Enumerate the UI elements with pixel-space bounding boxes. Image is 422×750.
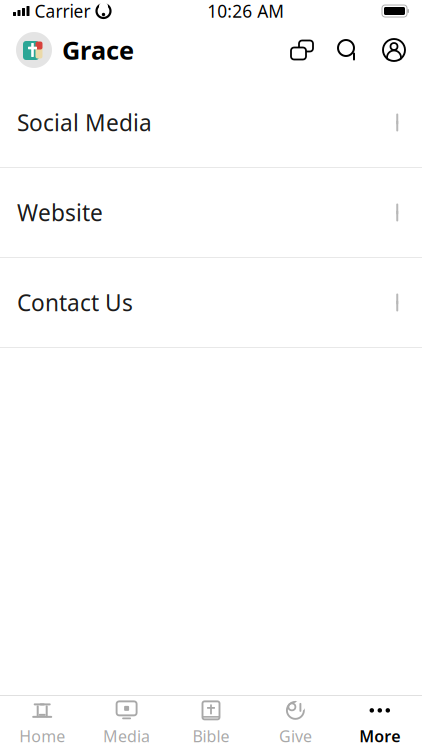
staticText: Grace [62,33,134,67]
staticText: Carrier [34,0,90,22]
staticText: Home [19,725,65,747]
button[interactable]: Search [336,38,360,62]
button[interactable]: Contact Us [0,258,422,347]
staticText: Give [279,725,312,747]
staticText: Website [17,197,103,227]
button[interactable]: Account [382,38,406,62]
button[interactable]: Social Media [0,78,422,167]
button[interactable]: Give [253,696,338,750]
button[interactable]: Bible [169,696,253,750]
staticText: Bible [192,725,229,747]
staticText: 10:26 AM [207,0,284,22]
button[interactable]: More [338,696,422,750]
button[interactable]: Home [0,696,84,750]
staticText: More [359,725,400,747]
button[interactable]: Grace church home [16,32,134,68]
button[interactable]: Website [0,168,422,257]
button[interactable]: Messages [290,39,314,61]
staticText: Contact Us [17,287,133,317]
button[interactable]: Media [84,696,169,750]
staticText: Media [103,725,150,747]
staticText: Social Media [17,107,152,137]
